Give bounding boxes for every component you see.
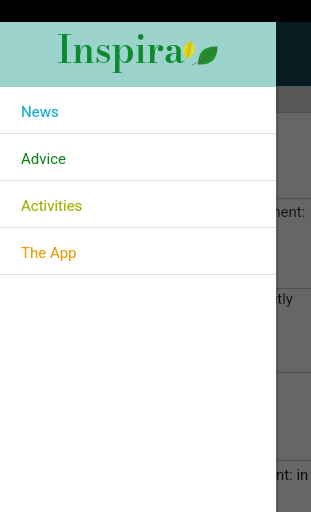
button[interactable]: Activities	[0, 181, 276, 228]
staticText: The environment: in	[177, 466, 309, 484]
staticText: Advice	[21, 150, 66, 168]
button[interactable]: Advice	[0, 134, 276, 181]
staticText: News	[21, 103, 59, 121]
staticText: Activities	[21, 197, 83, 215]
staticText: Inspira	[57, 21, 185, 77]
button[interactable]: The App	[0, 228, 276, 275]
button[interactable]: The environment: in	[177, 466, 309, 484]
staticText: The App	[21, 244, 77, 262]
staticText: needs to grow correctly	[137, 290, 293, 308]
button[interactable]: News	[0, 87, 276, 134]
button[interactable]: A healthy environment:	[153, 203, 306, 221]
button[interactable]	[0, 22, 311, 512]
staticText: A healthy environment:	[153, 203, 306, 221]
button[interactable]: needs to grow correctly	[137, 290, 293, 308]
